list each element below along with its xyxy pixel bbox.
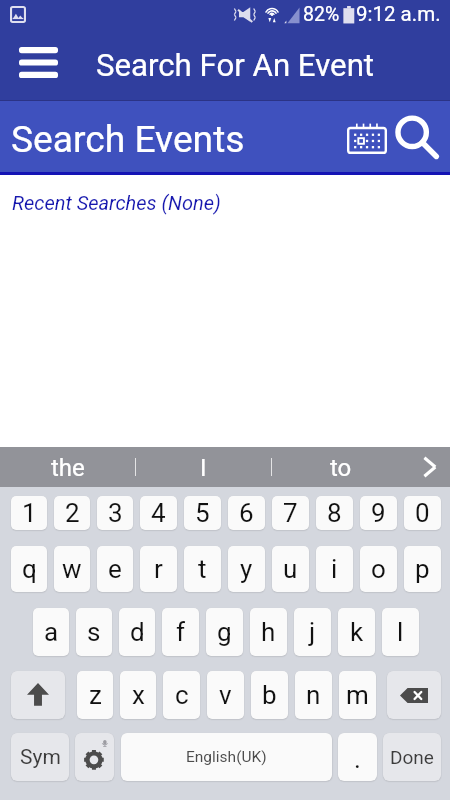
button[interactable]: Input settings xyxy=(75,733,114,781)
staticText: w xyxy=(62,554,82,584)
staticText: p xyxy=(415,554,430,584)
staticText: n xyxy=(306,680,321,710)
button[interactable]: h xyxy=(250,608,287,656)
staticText: o xyxy=(371,554,386,584)
button[interactable]: e xyxy=(97,546,133,592)
button[interactable]: r xyxy=(140,546,177,592)
button[interactable]: 1 xyxy=(11,496,47,530)
button[interactable]: Pick a date xyxy=(341,112,393,164)
staticText: 4 xyxy=(151,498,166,528)
staticText: 3 xyxy=(108,498,123,528)
button[interactable]: i xyxy=(316,546,353,592)
staticText: q xyxy=(22,554,37,584)
staticText: f xyxy=(176,617,186,647)
staticText: j xyxy=(309,617,316,647)
button[interactable]: . xyxy=(338,733,377,781)
staticText: h xyxy=(261,617,276,647)
staticText: t xyxy=(198,554,207,584)
button[interactable]: a xyxy=(33,608,69,656)
button[interactable]: j xyxy=(294,608,331,656)
button[interactable]: 8 xyxy=(316,496,353,530)
button[interactable]: 2 xyxy=(54,496,90,530)
button[interactable]: x xyxy=(120,671,156,719)
button[interactable]: Shift xyxy=(11,671,65,719)
staticText: k xyxy=(350,617,364,647)
staticText: m xyxy=(346,680,369,710)
staticText: a xyxy=(44,617,59,647)
staticText: i xyxy=(331,554,338,584)
staticText: u xyxy=(283,554,298,584)
button[interactable]: w xyxy=(54,546,90,592)
staticText: Done xyxy=(390,746,434,768)
staticText: c xyxy=(175,680,189,710)
staticText: to xyxy=(330,454,352,482)
staticText: z xyxy=(89,680,102,710)
button[interactable]: to xyxy=(272,447,410,487)
button[interactable]: m xyxy=(339,671,376,719)
staticText: Recent Searches (None) xyxy=(12,191,221,214)
staticText: I xyxy=(200,454,207,482)
staticText: e xyxy=(108,554,122,584)
staticText: 1 xyxy=(22,498,37,528)
staticText: x xyxy=(132,680,145,710)
button[interactable]: 3 xyxy=(97,496,133,530)
staticText: 5 xyxy=(195,498,210,528)
staticText: 2 xyxy=(65,498,80,528)
button[interactable]: 9 xyxy=(360,496,397,530)
button[interactable]: p xyxy=(404,546,441,592)
button[interactable]: t xyxy=(184,546,221,592)
staticText: 7 xyxy=(283,498,298,528)
staticText: 0 xyxy=(415,498,430,528)
staticText: b xyxy=(262,680,277,710)
button[interactable]: 7 xyxy=(272,496,309,530)
staticText: . xyxy=(354,744,361,774)
staticText: 8 xyxy=(327,498,342,528)
button[interactable]: o xyxy=(360,546,397,592)
staticText: y xyxy=(240,554,253,584)
staticText: the xyxy=(51,454,85,482)
button[interactable]: n xyxy=(295,671,332,719)
button[interactable]: k xyxy=(338,608,375,656)
staticText: 82% xyxy=(303,3,340,26)
button[interactable]: 5 xyxy=(184,496,221,530)
button[interactable]: g xyxy=(206,608,243,656)
staticText: Search For An Event xyxy=(96,47,375,84)
staticText: g xyxy=(217,617,232,647)
button[interactable]: I xyxy=(136,447,271,487)
button[interactable]: d xyxy=(119,608,155,656)
staticText: v xyxy=(219,680,232,710)
button[interactable]: English(UK) xyxy=(121,733,332,781)
button[interactable]: 0 xyxy=(404,496,441,530)
button[interactable]: s xyxy=(76,608,112,656)
button[interactable]: 4 xyxy=(140,496,177,530)
button[interactable]: 6 xyxy=(228,496,265,530)
button[interactable]: c xyxy=(163,671,200,719)
staticText: d xyxy=(130,617,145,647)
staticText: 6 xyxy=(239,498,254,528)
staticText: r xyxy=(154,554,163,584)
button[interactable]: Open navigation menu xyxy=(8,33,69,91)
button[interactable]: Done xyxy=(383,733,441,781)
staticText: s xyxy=(87,617,101,647)
button[interactable]: Sym xyxy=(11,733,69,781)
staticText: 9 xyxy=(371,498,386,528)
button[interactable]: Search xyxy=(391,112,443,164)
button[interactable]: u xyxy=(272,546,309,592)
button[interactable]: l xyxy=(382,608,419,656)
button[interactable]: q xyxy=(11,546,47,592)
button[interactable]: y xyxy=(228,546,265,592)
button[interactable]: the xyxy=(0,447,135,487)
staticText: English(UK) xyxy=(186,748,267,766)
staticText: 9:12 a.m. xyxy=(356,2,441,26)
button[interactable]: f xyxy=(162,608,199,656)
button[interactable]: b xyxy=(251,671,288,719)
staticText: l xyxy=(397,617,404,647)
staticText: Search Events xyxy=(11,117,245,161)
button[interactable]: Backspace xyxy=(387,671,441,719)
button[interactable]: More suggestions xyxy=(410,447,450,487)
button[interactable]: v xyxy=(207,671,244,719)
button[interactable]: z xyxy=(77,671,113,719)
staticText: Sym xyxy=(20,745,61,770)
